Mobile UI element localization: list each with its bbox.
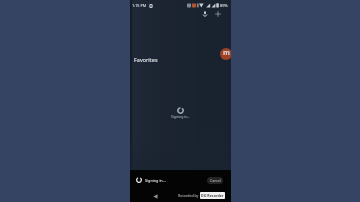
button[interactable]: Account	[220, 48, 231, 60]
staticText: Cancel	[210, 178, 221, 183]
staticText: Signing in...	[145, 178, 166, 183]
staticText: Signing in...	[171, 114, 191, 119]
button[interactable]: Favorites	[134, 56, 158, 63]
button[interactable]: Add	[212, 8, 224, 20]
button[interactable]: Voice search	[199, 8, 211, 20]
staticText: DU Recorder	[201, 193, 224, 198]
staticText: m	[223, 48, 230, 58]
staticText: Favorites	[134, 56, 158, 63]
staticText: 1:15 PM	[132, 3, 147, 8]
button[interactable]: Back	[150, 191, 160, 201]
staticText: Recorded by	[178, 193, 200, 198]
button[interactable]: Cancel	[207, 177, 223, 184]
staticText: 89%	[220, 3, 228, 8]
